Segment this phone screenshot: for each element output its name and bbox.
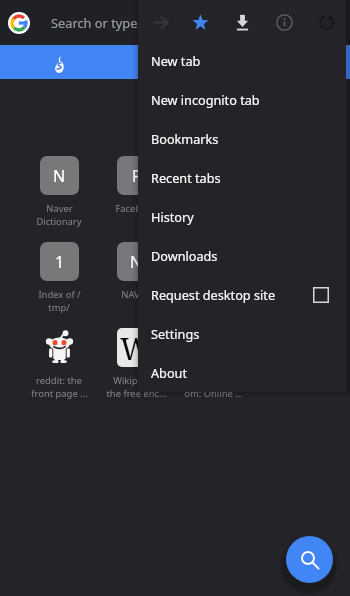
button[interactable]: Search	[286, 536, 333, 583]
button[interactable]: New incognito tab	[138, 80, 346, 119]
staticText: the free enc...	[106, 387, 167, 400]
button[interactable]: Recent tabs	[138, 158, 346, 197]
button[interactable]: Forward	[143, 0, 177, 45]
button[interactable]: New tab	[138, 41, 346, 80]
staticText: Request desktop site	[151, 286, 276, 303]
button[interactable]: Downloads	[138, 236, 346, 275]
button[interactable]: About	[138, 353, 346, 392]
staticText: W	[120, 328, 152, 367]
staticText: Bookmarks	[151, 130, 219, 147]
staticText: tmp/	[48, 301, 70, 314]
staticText: About	[151, 364, 188, 381]
staticText: History	[151, 208, 194, 225]
staticText: N	[53, 165, 66, 187]
button[interactable]: Settings	[138, 314, 346, 353]
staticText: N	[130, 251, 143, 273]
staticText: Dictionary	[36, 215, 82, 228]
staticText: reddit: the	[36, 374, 82, 387]
staticText: Index of /	[38, 288, 81, 301]
staticText: front page ...	[31, 387, 88, 400]
staticText: om: Online ...	[184, 387, 243, 400]
button[interactable]: F	[76, 156, 196, 215]
staticText: New incognito tab	[151, 91, 260, 108]
button[interactable]: W	[76, 328, 196, 400]
staticText: Downloads	[151, 247, 218, 264]
staticText: Communication: On	[169, 374, 258, 387]
staticText: Naver	[46, 202, 73, 215]
button[interactable]: Bookmarks	[138, 119, 346, 158]
button[interactable]: Request desktop site	[138, 275, 346, 314]
button[interactable]: Page info	[267, 0, 301, 45]
staticText: Search or type	[51, 14, 138, 31]
staticText: Facebook	[115, 202, 158, 215]
button[interactable]: Reload	[309, 0, 343, 45]
staticText: Recent tabs	[151, 169, 221, 186]
button[interactable]: Communication: On	[153, 328, 273, 400]
staticText: 1	[55, 251, 65, 273]
staticText: NAVER	[121, 288, 151, 301]
staticText: Settings	[151, 325, 200, 342]
button[interactable]: History	[138, 197, 346, 236]
staticText: New tab	[151, 52, 201, 69]
button[interactable]: 1	[0, 242, 119, 314]
staticText: Wikipedia,	[113, 374, 159, 387]
button[interactable]: reddit: the	[0, 328, 119, 400]
button[interactable]: N	[0, 156, 119, 228]
staticText: F	[132, 165, 141, 187]
button[interactable]: Download	[225, 0, 259, 45]
button[interactable]: N	[76, 242, 196, 301]
button[interactable]: Bookmark	[183, 0, 217, 45]
